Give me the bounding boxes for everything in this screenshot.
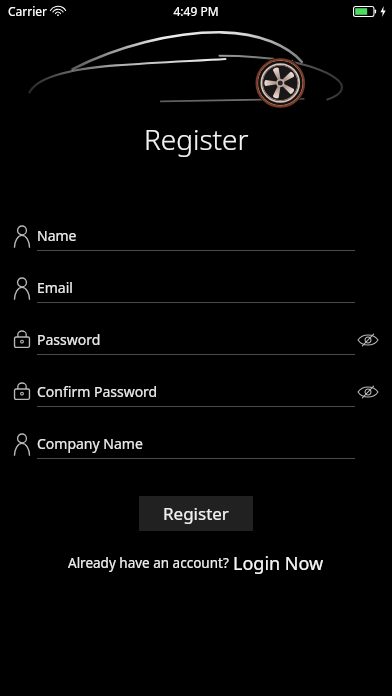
button[interactable]: Login Now	[233, 551, 324, 576]
staticText: Carrier	[8, 3, 48, 19]
button[interactable]: Password	[37, 325, 347, 353]
staticText: Name	[37, 226, 77, 245]
button[interactable]: Show password	[352, 327, 384, 353]
staticText: 4:49 PM	[173, 3, 219, 19]
button[interactable]: Email	[37, 273, 355, 301]
button[interactable]: Confirm Password	[37, 377, 347, 405]
staticText: Company Name	[37, 434, 143, 453]
button[interactable]: Register	[139, 496, 253, 531]
staticText: Register	[144, 120, 249, 158]
staticText: Register	[163, 502, 229, 525]
button[interactable]: Company Name	[37, 429, 355, 457]
staticText: Password	[37, 330, 101, 349]
staticText: Login Now	[233, 551, 324, 576]
staticText: Email	[37, 278, 73, 297]
staticText: Confirm Password	[37, 382, 158, 401]
button[interactable]: Name	[37, 221, 355, 249]
staticText: Already have an account?	[68, 554, 233, 572]
button[interactable]: Show password	[352, 379, 384, 405]
